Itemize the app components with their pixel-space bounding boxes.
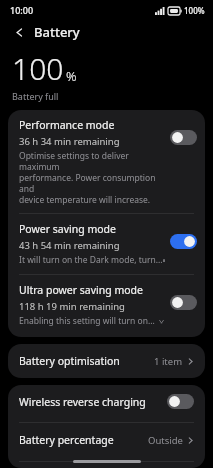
staticText: 36 h 34 min remaining xyxy=(19,135,120,148)
staticText: It will turn on the Dark mode, turn... xyxy=(19,254,163,266)
staticText: Battery optimisation xyxy=(19,354,154,368)
button[interactable]: Expand description xyxy=(159,315,164,327)
button[interactable]: Power saving mode xyxy=(8,214,205,270)
staticText: Power saving mode xyxy=(19,222,116,236)
button[interactable]: Back xyxy=(10,23,28,41)
staticText: Enabling this setting will turn on... xyxy=(19,315,155,327)
staticText: Ultra power saving mode xyxy=(19,283,143,297)
button[interactable]: Wireless reverse charging xyxy=(8,385,205,418)
staticText: 100 xyxy=(12,48,64,89)
button[interactable]: Power saving mode toggle xyxy=(170,234,197,249)
button[interactable]: Battery percentage xyxy=(8,423,205,457)
button[interactable]: Ultra power saving mode xyxy=(8,275,205,331)
staticText: 43 h 54 min remaining xyxy=(19,239,120,252)
staticText: Battery percentage xyxy=(19,433,148,447)
button[interactable]: App launch xyxy=(8,462,205,468)
staticText: Optimise settings to deliver maximum per… xyxy=(19,150,164,205)
staticText: 118 h 19 min remaining xyxy=(19,300,125,313)
staticText: Wireless reverse charging xyxy=(19,395,167,409)
staticText: 100% xyxy=(184,5,205,16)
button[interactable]: Performance mode xyxy=(8,110,205,209)
staticText: Battery full xyxy=(12,90,59,102)
button[interactable]: Wireless reverse charging toggle xyxy=(167,394,194,409)
staticText: Performance mode xyxy=(19,118,115,132)
staticText: Battery xyxy=(34,23,80,41)
staticText: % xyxy=(66,67,77,85)
button[interactable]: Performance mode toggle xyxy=(170,130,197,145)
staticText: 1 item xyxy=(154,355,183,368)
staticText: Outside xyxy=(148,434,183,447)
staticText: 10:00 xyxy=(10,4,34,16)
button[interactable]: Ultra power saving mode toggle xyxy=(170,295,197,310)
button[interactable]: Battery optimisation xyxy=(8,344,205,378)
